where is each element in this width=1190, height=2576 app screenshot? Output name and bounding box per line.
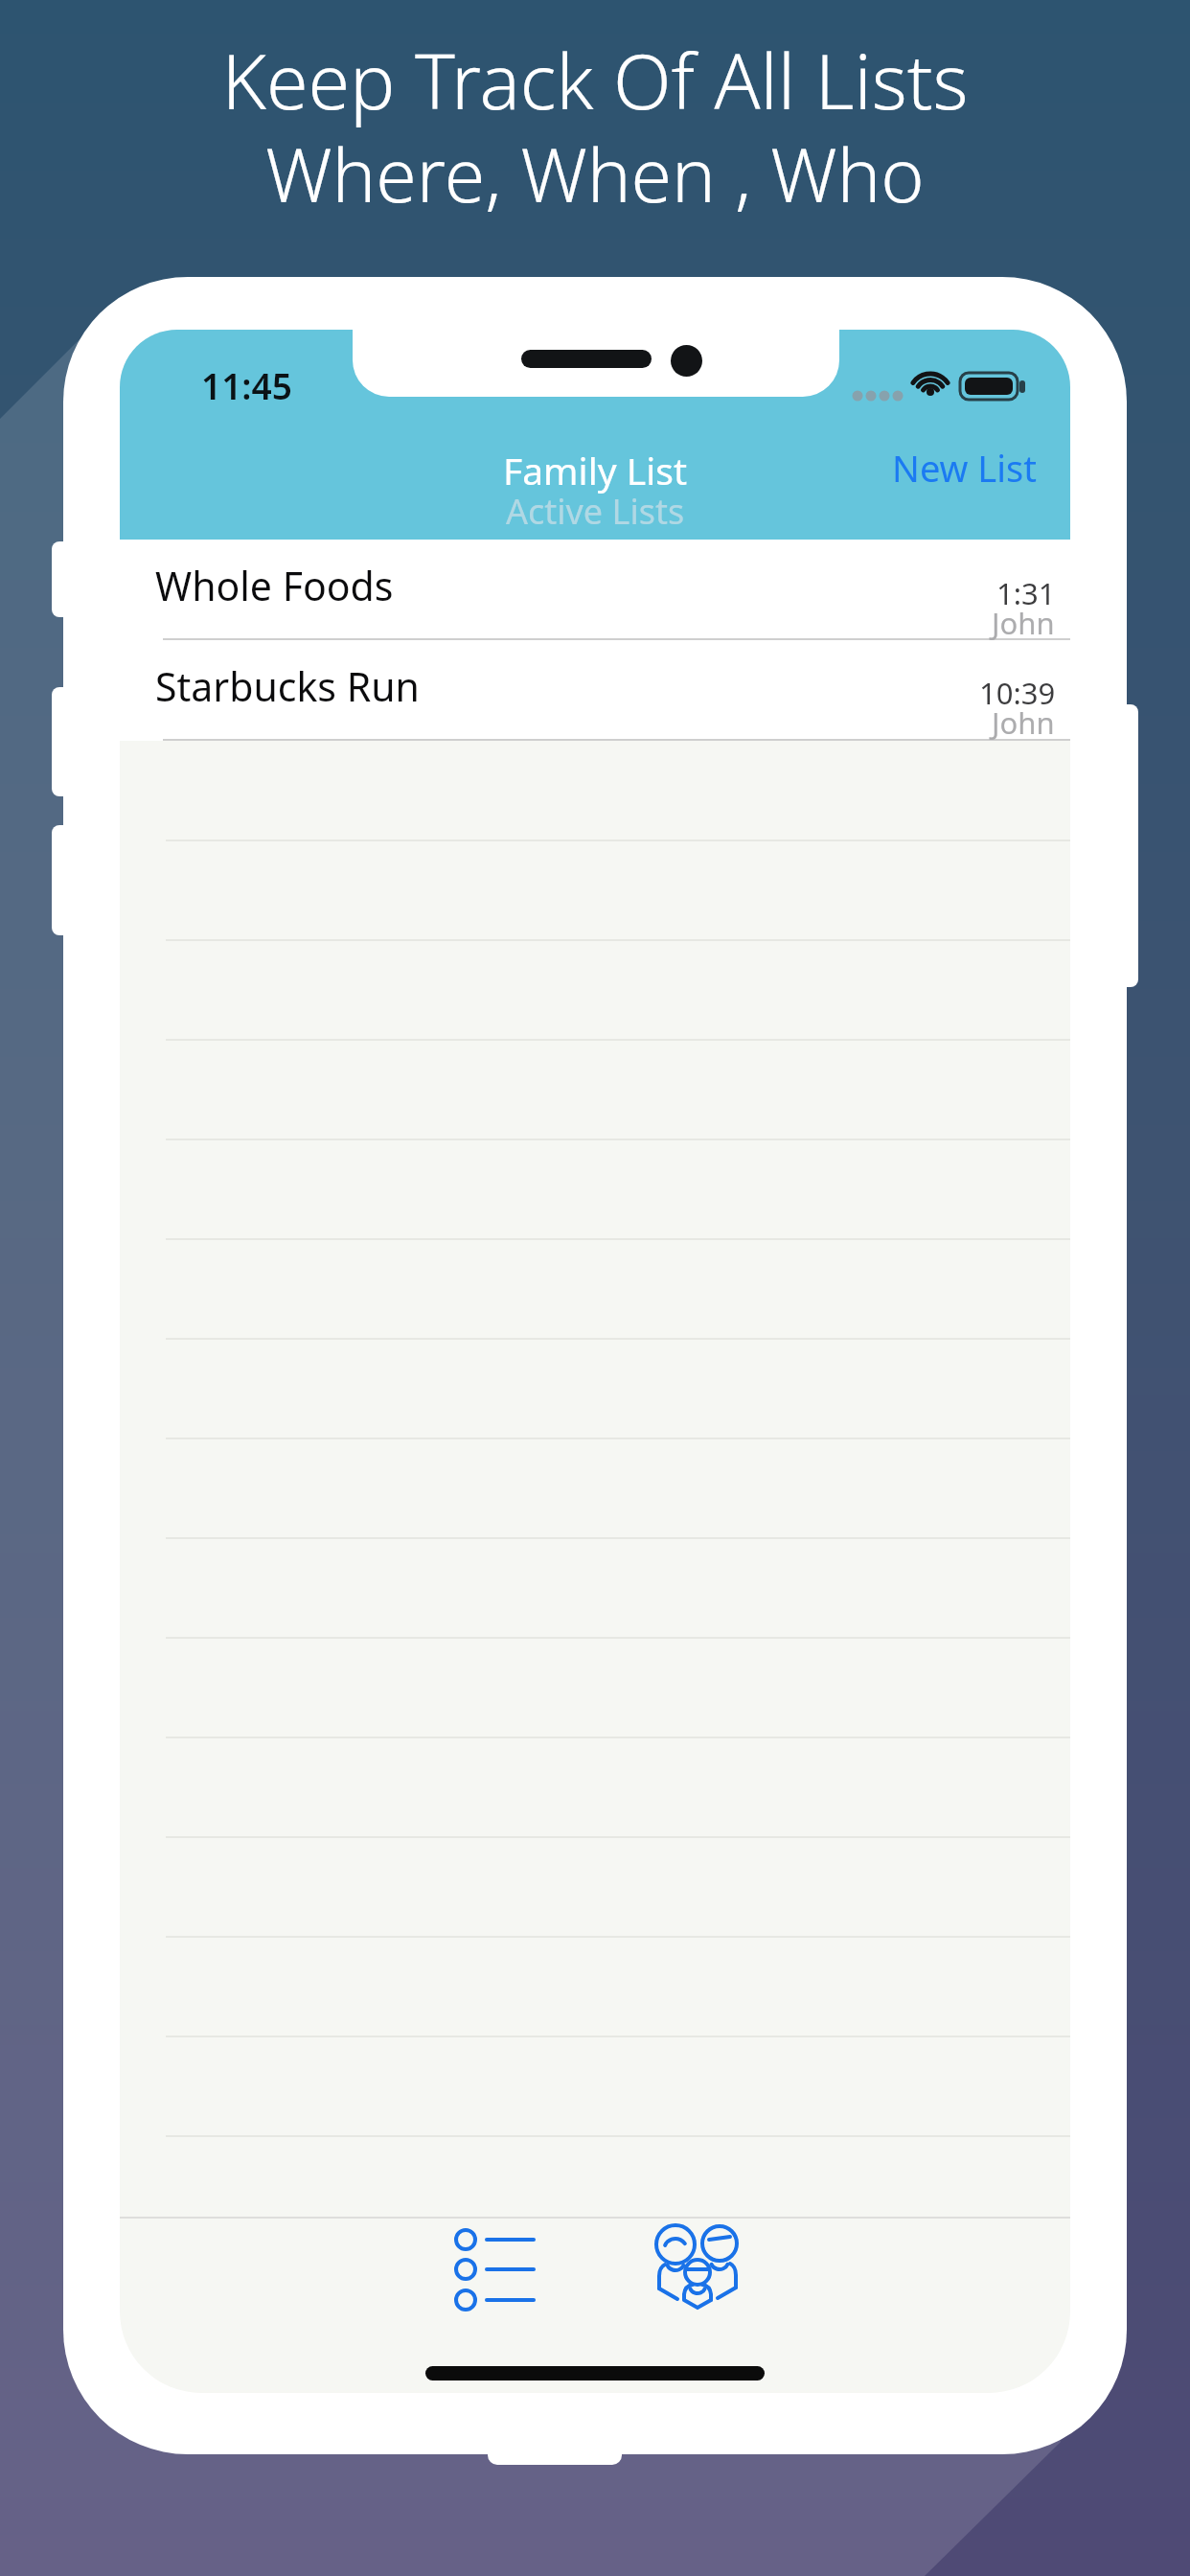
staticText: John bbox=[992, 603, 1055, 643]
staticText: 10:39 bbox=[979, 673, 1056, 713]
button[interactable]: Starbucks Run bbox=[120, 640, 1070, 741]
staticText: Starbucks Run bbox=[155, 659, 420, 713]
staticText: 11:45 bbox=[201, 361, 292, 409]
staticText: John bbox=[992, 702, 1055, 743]
staticText: Where, When , Who bbox=[0, 124, 1190, 224]
button[interactable] bbox=[618, 2222, 790, 2337]
staticText: Keep Track Of All Lists bbox=[0, 29, 1190, 132]
button[interactable]: Whole Foods bbox=[120, 540, 1070, 640]
staticText: 1:31 bbox=[996, 573, 1056, 613]
button[interactable] bbox=[403, 2222, 595, 2337]
staticText: Active Lists bbox=[506, 488, 685, 535]
staticText: Whole Foods bbox=[155, 559, 394, 612]
staticText: Family List bbox=[503, 445, 687, 495]
button[interactable]: New List bbox=[892, 443, 1037, 493]
